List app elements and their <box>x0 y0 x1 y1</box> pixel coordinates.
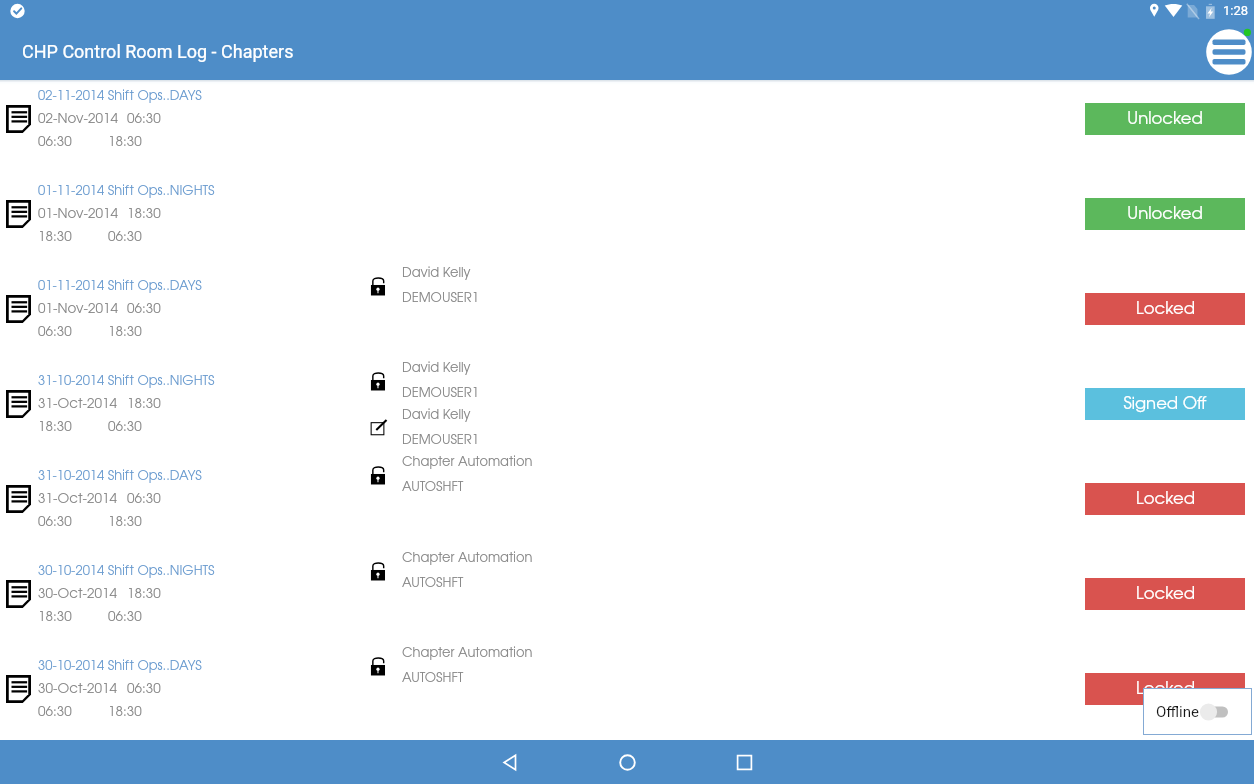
staticText: 06:30 <box>108 421 142 434</box>
staticText: 02-Nov-2014 <box>38 113 118 126</box>
button[interactable]: 31-10-2014 Shift Ops..NIGHTS <box>0 369 1254 464</box>
staticText: 06:30 <box>108 231 142 244</box>
staticText: 18:30 <box>127 208 161 221</box>
staticText: Chapter Automation <box>402 552 533 564</box>
staticText: Locked <box>1136 302 1195 317</box>
staticText: DEMOUSER1 <box>402 387 479 399</box>
staticText: AUTOSHFT <box>402 672 464 684</box>
button[interactable]: Unlocked <box>1085 198 1245 230</box>
staticText: Unlocked <box>1127 112 1203 127</box>
staticText: Locked <box>1136 492 1195 507</box>
button[interactable]: Recents <box>722 740 766 784</box>
staticText: 02-11-2014 Shift Ops..DAYS <box>38 90 202 102</box>
button[interactable]: 30-10-2014 Shift Ops..NIGHTS <box>0 559 1254 654</box>
staticText: 30-Oct-2014 <box>38 588 117 601</box>
staticText: 18:30 <box>38 231 72 244</box>
staticText: 18:30 <box>108 516 142 529</box>
button[interactable]: Locked <box>1085 483 1245 515</box>
staticText: David Kelly <box>402 267 471 279</box>
staticText: 1:28 <box>1223 3 1249 18</box>
staticText: 18:30 <box>127 398 161 411</box>
staticText: 06:30 <box>38 706 72 719</box>
staticText: 06:30 <box>127 493 161 506</box>
button[interactable]: 02-11-2014 Shift Ops..DAYS <box>0 84 1254 179</box>
button[interactable]: 31-10-2014 Shift Ops..DAYS <box>0 464 1254 559</box>
staticText: 06:30 <box>108 611 142 624</box>
staticText: 18:30 <box>38 421 72 434</box>
staticText: 18:30 <box>108 326 142 339</box>
staticText: 01-Nov-2014 <box>38 208 118 221</box>
staticText: Signed Off <box>1123 397 1207 412</box>
staticText: 18:30 <box>127 588 161 601</box>
button[interactable]: Unlocked <box>1085 103 1245 135</box>
staticText: CHP Control Room Log - Chapters <box>22 41 294 62</box>
button[interactable]: Signed Off <box>1085 388 1245 420</box>
button[interactable]: Home <box>605 740 649 784</box>
staticText: Chapter Automation <box>402 647 533 659</box>
staticText: David Kelly <box>402 362 471 374</box>
staticText: 31-10-2014 Shift Ops..NIGHTS <box>38 375 215 387</box>
staticText: 06:30 <box>38 136 72 149</box>
staticText: AUTOSHFT <box>402 481 464 493</box>
staticText: DEMOUSER1 <box>402 434 479 446</box>
button[interactable]: Offline <box>1143 688 1252 735</box>
button[interactable]: Locked <box>1085 673 1245 705</box>
staticText: 31-Oct-2014 <box>38 398 117 411</box>
staticText: AUTOSHFT <box>402 577 464 589</box>
staticText: Chapter Automation <box>402 456 533 468</box>
staticText: 06:30 <box>127 303 161 316</box>
staticText: 18:30 <box>108 136 142 149</box>
staticText: 31-10-2014 Shift Ops..DAYS <box>38 470 202 482</box>
staticText: 18:30 <box>38 611 72 624</box>
staticText: 01-Nov-2014 <box>38 303 118 316</box>
button[interactable]: 30-10-2014 Shift Ops..DAYS <box>0 654 1254 749</box>
button[interactable]: Locked <box>1085 293 1245 325</box>
staticText: David Kelly <box>402 409 471 421</box>
staticText: Offline <box>1156 703 1200 721</box>
staticText: 01-11-2014 Shift Ops..DAYS <box>38 280 202 292</box>
staticText: DEMOUSER1 <box>402 292 479 304</box>
button[interactable]: Back <box>488 740 532 784</box>
staticText: 31-Oct-2014 <box>38 493 117 506</box>
staticText: 06:30 <box>127 683 161 696</box>
staticText: 30-10-2014 Shift Ops..DAYS <box>38 660 202 672</box>
staticText: Locked <box>1136 587 1195 602</box>
button[interactable]: 01-11-2014 Shift Ops..NIGHTS <box>0 179 1254 274</box>
staticText: 06:30 <box>38 516 72 529</box>
staticText: 01-11-2014 Shift Ops..NIGHTS <box>38 185 215 197</box>
staticText: 06:30 <box>127 113 161 126</box>
staticText: Unlocked <box>1127 207 1203 222</box>
staticText: Locked <box>1136 682 1195 697</box>
staticText: 30-Oct-2014 <box>38 683 117 696</box>
button[interactable]: Menu <box>1202 25 1254 79</box>
staticText: 06:30 <box>38 326 72 339</box>
button[interactable]: Locked <box>1085 578 1245 610</box>
staticText: 18:30 <box>108 706 142 719</box>
staticText: 30-10-2014 Shift Ops..NIGHTS <box>38 565 215 577</box>
button[interactable]: 01-11-2014 Shift Ops..DAYS <box>0 274 1254 369</box>
